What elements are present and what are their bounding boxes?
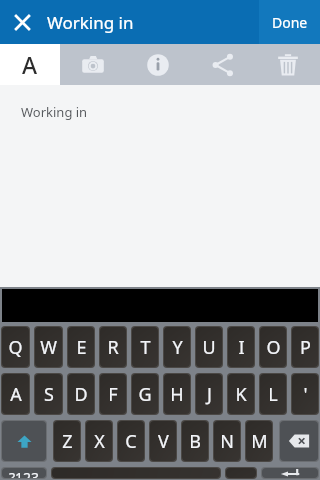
- staticText: W: [40, 335, 57, 360]
- staticText: Done: [272, 13, 308, 32]
- button[interactable]: W: [35, 327, 62, 367]
- staticText: V: [158, 429, 169, 454]
- button[interactable]: D: [68, 374, 94, 414]
- button[interactable]: L: [260, 374, 286, 414]
- button[interactable]: M: [246, 421, 272, 461]
- button[interactable]: A: [2, 374, 29, 414]
- button[interactable]: I: [228, 327, 254, 367]
- staticText: H: [170, 382, 184, 407]
- staticText: L: [268, 382, 278, 407]
- button[interactable]: J: [196, 374, 222, 414]
- staticText: P: [300, 335, 311, 360]
- staticText: X: [94, 429, 105, 454]
- staticText: D: [74, 382, 88, 407]
- staticText: U: [202, 335, 216, 360]
- button[interactable]: Delete: [255, 44, 320, 85]
- button[interactable]: R: [100, 327, 126, 367]
- staticText: B: [189, 429, 201, 454]
- button[interactable]: Z: [54, 421, 80, 461]
- button[interactable]: Close: [0, 0, 44, 44]
- button[interactable]: E: [68, 327, 94, 367]
- button[interactable]: Camera: [60, 44, 125, 85]
- button[interactable]: G: [132, 374, 158, 414]
- button[interactable]: F: [100, 374, 126, 414]
- button[interactable]: Enter: [262, 468, 318, 478]
- button[interactable]: T: [132, 327, 158, 367]
- button[interactable]: B: [182, 421, 208, 461]
- staticText: Q: [8, 335, 23, 360]
- button[interactable]: Shift: [2, 421, 46, 461]
- button[interactable]: C: [118, 421, 144, 461]
- button[interactable]: U: [196, 327, 222, 367]
- staticText: G: [138, 382, 152, 407]
- staticText: M: [251, 429, 268, 454]
- staticText: ': [303, 382, 308, 407]
- staticText: C: [125, 429, 137, 454]
- button[interactable]: A: [0, 44, 60, 85]
- staticText: K: [235, 382, 247, 407]
- staticText: E: [76, 335, 87, 360]
- button[interactable]: Done: [259, 0, 320, 44]
- staticText: Working in: [21, 103, 88, 121]
- button[interactable]: N: [214, 421, 240, 461]
- staticText: J: [207, 382, 212, 407]
- button[interactable]: Share: [190, 44, 255, 85]
- button[interactable]: .: [226, 468, 256, 478]
- button[interactable]: ?123: [2, 468, 46, 478]
- staticText: A: [22, 49, 38, 80]
- staticText: ?123: [9, 468, 40, 478]
- staticText: O: [266, 335, 281, 360]
- staticText: Working in: [47, 11, 134, 34]
- staticText: A: [10, 382, 22, 407]
- button[interactable]: S: [35, 374, 62, 414]
- staticText: T: [140, 335, 151, 360]
- staticText: Y: [172, 335, 183, 360]
- button[interactable]: P: [292, 327, 318, 367]
- button[interactable]: Y: [164, 327, 190, 367]
- button[interactable]: X: [86, 421, 112, 461]
- button[interactable]: K: [228, 374, 254, 414]
- button[interactable]: Info: [125, 44, 190, 85]
- staticText: N: [220, 429, 234, 454]
- staticText: S: [44, 382, 54, 407]
- staticText: I: [238, 335, 245, 360]
- button[interactable]: ': [292, 374, 318, 414]
- button[interactable]: V: [150, 421, 176, 461]
- button[interactable]: H: [164, 374, 190, 414]
- button[interactable]: O: [260, 327, 286, 367]
- staticText: F: [108, 382, 118, 407]
- staticText: R: [107, 335, 119, 360]
- button[interactable]: Q: [2, 327, 29, 367]
- button[interactable]: Backspace: [280, 421, 318, 461]
- staticText: Z: [62, 429, 73, 454]
